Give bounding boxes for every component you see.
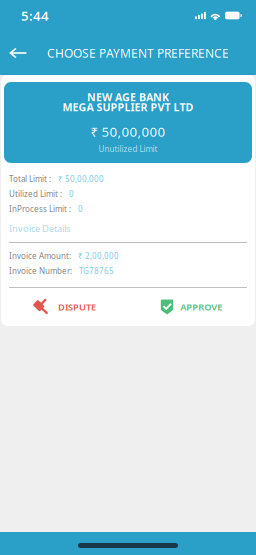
staticText: ₹ 50,00,000 [90, 123, 165, 140]
staticText: APPROVE [180, 301, 222, 313]
staticText: 0 [69, 189, 74, 199]
staticText: Invoice Amount: [9, 251, 71, 261]
staticText: InProcess Limit : [9, 204, 71, 214]
staticText: Invoice Number: [9, 266, 72, 276]
staticText: 5:44 [21, 7, 49, 24]
staticText: TG78765 [79, 266, 114, 276]
staticText: Invoice Details [9, 222, 70, 235]
staticText: Total Limit : [9, 174, 51, 184]
staticText: ₹ 2,00,000 [78, 251, 119, 261]
staticText: ₹ 50,00,000 [58, 174, 104, 184]
staticText: DISPUTE [58, 301, 96, 313]
staticText: Unutilized Limit [98, 144, 157, 154]
button[interactable]: Back [0, 31, 47, 75]
staticText: CHOOSE PAYMENT PREFERENCE [47, 45, 229, 61]
staticText: NEW AGE BANK [87, 90, 169, 104]
staticText: Utilized Limit : [9, 189, 62, 199]
staticText: 0 [78, 204, 83, 214]
staticText: MEGA SUPPLIER PVT LTD [62, 100, 193, 114]
button[interactable]: DISPUTE [1, 288, 128, 326]
button[interactable]: APPROVE [128, 288, 255, 326]
